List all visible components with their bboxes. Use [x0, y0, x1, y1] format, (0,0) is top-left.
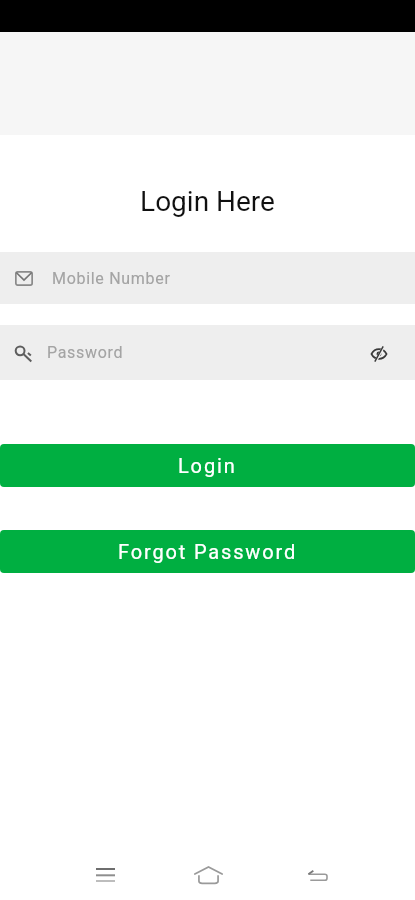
staticText: Mobile Number [52, 269, 171, 288]
button[interactable]: Password [0, 325, 415, 380]
staticText: Login Here [0, 185, 415, 218]
staticText: Password [47, 343, 124, 362]
button[interactable]: Forgot Password [0, 530, 415, 573]
button[interactable]: Mobile Number [0, 252, 415, 304]
staticText: Login [178, 454, 237, 477]
button[interactable]: Home [178, 850, 238, 900]
button[interactable]: Recent apps [75, 850, 135, 900]
button[interactable]: Back [287, 850, 347, 900]
button[interactable]: Login [0, 444, 415, 487]
button[interactable]: Show password [363, 338, 395, 370]
staticText: Forgot Password [118, 540, 298, 563]
